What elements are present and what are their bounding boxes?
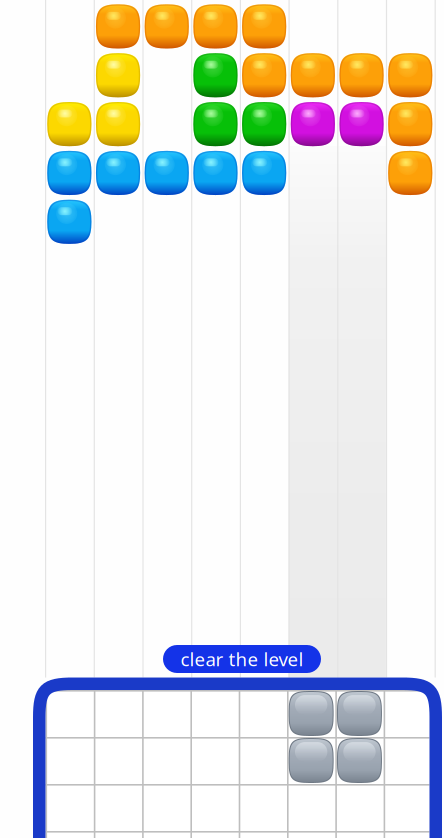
staticText: clear the level bbox=[180, 647, 303, 671]
button[interactable]: clear the level bbox=[163, 645, 321, 673]
